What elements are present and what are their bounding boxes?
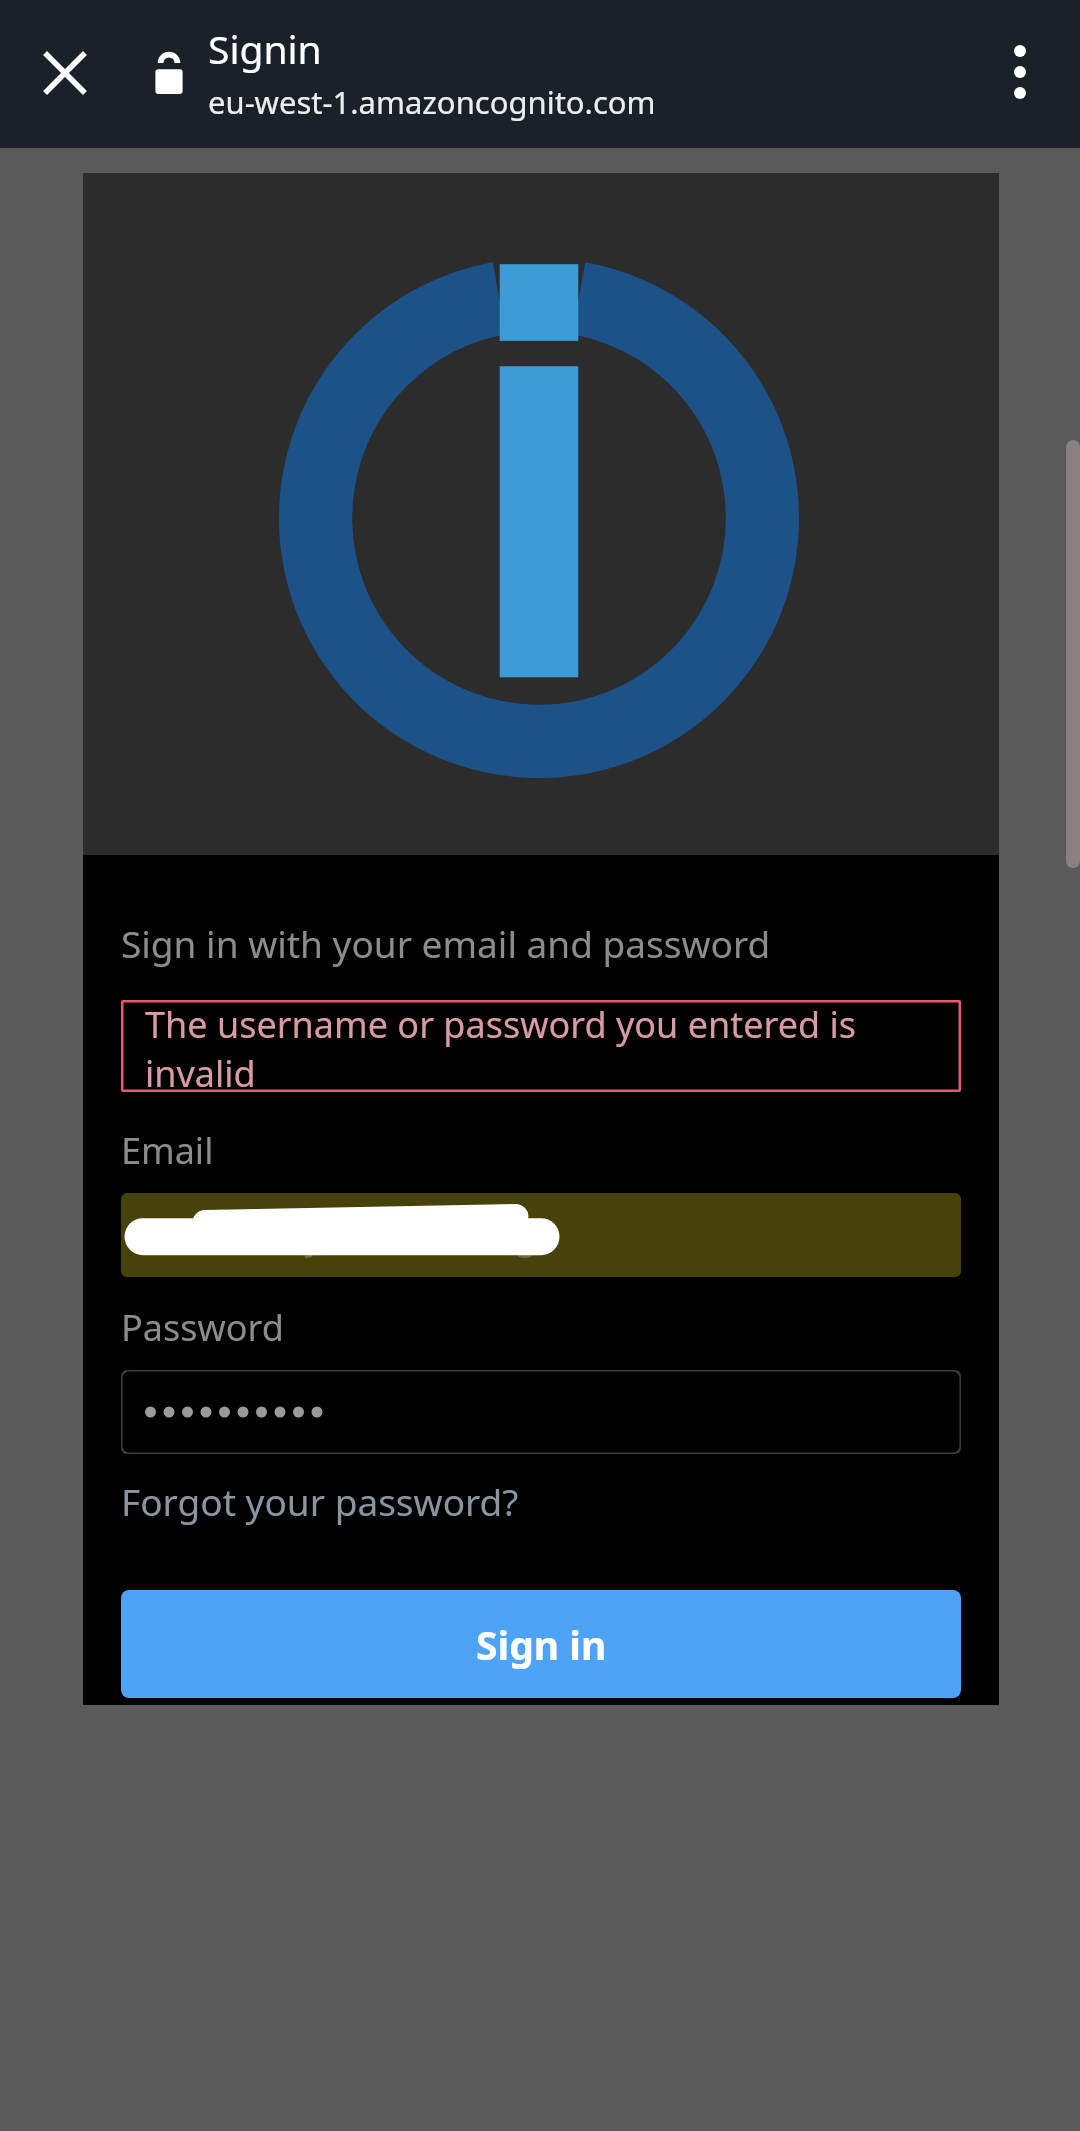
button[interactable] [121, 1370, 961, 1454]
staticText: Sign in with your email and password [121, 918, 771, 968]
button[interactable]: Somebody@something [121, 1193, 961, 1277]
button[interactable]: Forgot your password? [121, 1476, 519, 1526]
staticText: Email [121, 1126, 214, 1175]
button[interactable]: More options [975, 27, 1065, 117]
staticText: Sign in [476, 1618, 607, 1671]
staticText: Somebody@something [143, 1211, 538, 1260]
staticText: Password [121, 1303, 284, 1352]
button[interactable]: Close [20, 28, 110, 118]
staticText: eu-west-1.amazoncognito.com [208, 81, 656, 123]
staticText: The username or password you entered is … [145, 1000, 961, 1092]
staticText: Forgot your password? [121, 1476, 519, 1526]
staticText: Signin [208, 22, 322, 75]
button[interactable]: Sign in [121, 1590, 961, 1698]
